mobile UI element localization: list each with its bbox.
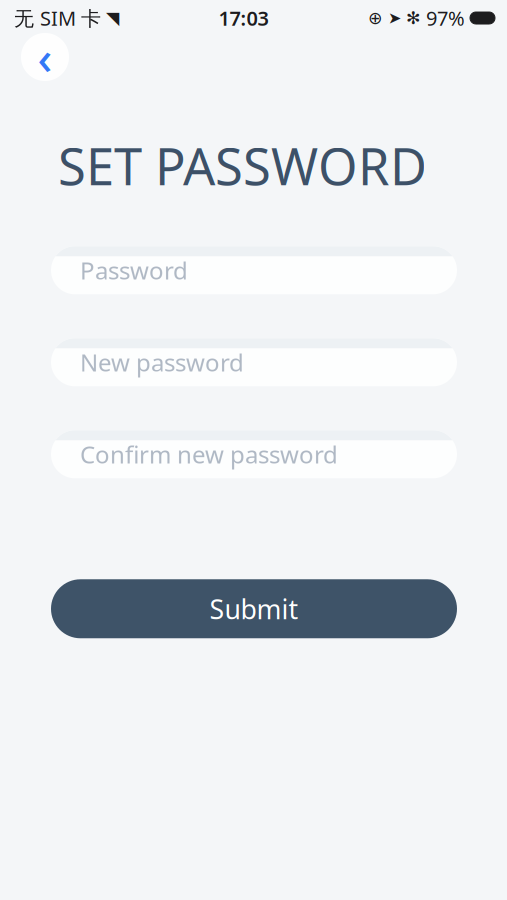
staticText: 无 SIM 卡 xyxy=(14,5,101,31)
staticText: ⊕ xyxy=(368,8,383,28)
button[interactable]: Back xyxy=(21,33,69,81)
staticText: ✻ xyxy=(406,8,421,28)
staticText: ◥ xyxy=(106,8,119,28)
staticText: Submit xyxy=(209,591,298,626)
staticText: SET PASSWORD xyxy=(58,132,427,199)
staticText: 17:03 xyxy=(218,5,268,31)
staticText: 97% xyxy=(426,5,465,31)
staticText: ➤ xyxy=(388,9,401,27)
button[interactable]: Submit xyxy=(51,579,457,638)
staticText: Password xyxy=(80,254,188,286)
staticText: Confirm new password xyxy=(80,438,338,470)
staticText: ‹ xyxy=(37,27,52,87)
staticText: New password xyxy=(80,346,244,378)
